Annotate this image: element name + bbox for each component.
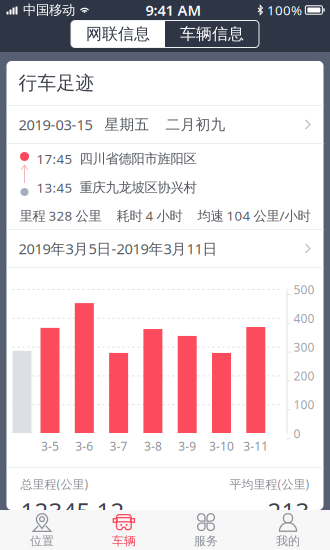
staticText: 3-11: [243, 438, 268, 454]
staticText: 300: [293, 339, 314, 355]
staticText: 里程 328 公里: [19, 207, 101, 224]
staticText: 3-8: [144, 438, 162, 454]
staticText: 位置: [30, 534, 54, 548]
staticText: 0: [293, 425, 300, 441]
staticText: 3-5: [41, 438, 59, 454]
staticText: 13:45: [36, 179, 72, 196]
staticText: 3-9: [178, 438, 196, 454]
staticText: 平均里程(公里): [229, 476, 309, 492]
staticText: 100%: [264, 1, 305, 19]
staticText: 200: [293, 368, 314, 384]
staticText: 500: [293, 281, 314, 297]
button[interactable]: 我的: [247, 510, 329, 550]
button[interactable]: 车辆: [83, 510, 165, 550]
button[interactable]: 2019-03-15: [6, 106, 323, 143]
staticText: 17:45: [36, 150, 72, 168]
staticText: 车辆信息: [180, 24, 244, 44]
staticText: 均速 104 公里/小时: [197, 207, 310, 224]
staticText: 9:41 AM: [145, 0, 201, 20]
staticText: 耗时 4 小时: [116, 207, 182, 224]
button[interactable]: 网联信息: [71, 21, 165, 47]
staticText: 3-10: [209, 438, 234, 454]
staticText: 重庆九龙坡区协兴村: [79, 179, 196, 196]
staticText: 12345.12: [20, 495, 124, 527]
staticText: 我的: [276, 534, 300, 548]
staticText: 3-6: [75, 438, 93, 454]
staticText: 服务: [194, 534, 218, 548]
button[interactable]: 车辆信息: [165, 21, 259, 47]
staticText: 行车足迹: [18, 71, 94, 94]
button[interactable]: 位置: [1, 510, 83, 550]
staticText: 3-7: [110, 438, 128, 454]
staticText: 四川省德阳市旌阳区: [79, 151, 196, 167]
staticText: 400: [293, 310, 314, 326]
staticText: 213: [267, 495, 309, 527]
staticText: 车辆: [112, 534, 136, 548]
button[interactable]: 2019年3月5日-2019年3月11日: [6, 230, 323, 267]
staticText: 总里程(公里): [20, 476, 88, 492]
staticText: 星期五 二月初九: [92, 115, 225, 133]
staticText: 网联信息: [86, 24, 150, 44]
staticText: 中国移动: [19, 2, 79, 18]
staticText: 2019-03-15: [18, 115, 92, 134]
button[interactable]: 服务: [165, 510, 247, 550]
staticText: 2019年3月5日-2019年3月11日: [18, 239, 217, 258]
staticText: 100: [293, 397, 314, 413]
